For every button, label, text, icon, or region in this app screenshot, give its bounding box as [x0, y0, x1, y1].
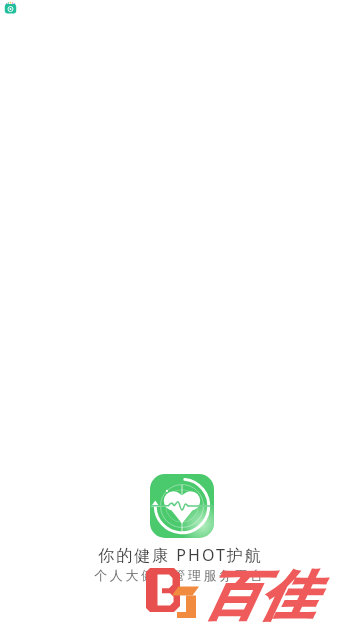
- button[interactable]: Screen recorder: [4, 2, 17, 15]
- staticText: 百佳: [203, 563, 314, 630]
- staticText: 你的健康 PHOT护航: [98, 544, 263, 566]
- staticText: 个人大健康管理服务平台: [94, 567, 266, 583]
- button[interactable]: PHOT health app: [150, 474, 214, 538]
